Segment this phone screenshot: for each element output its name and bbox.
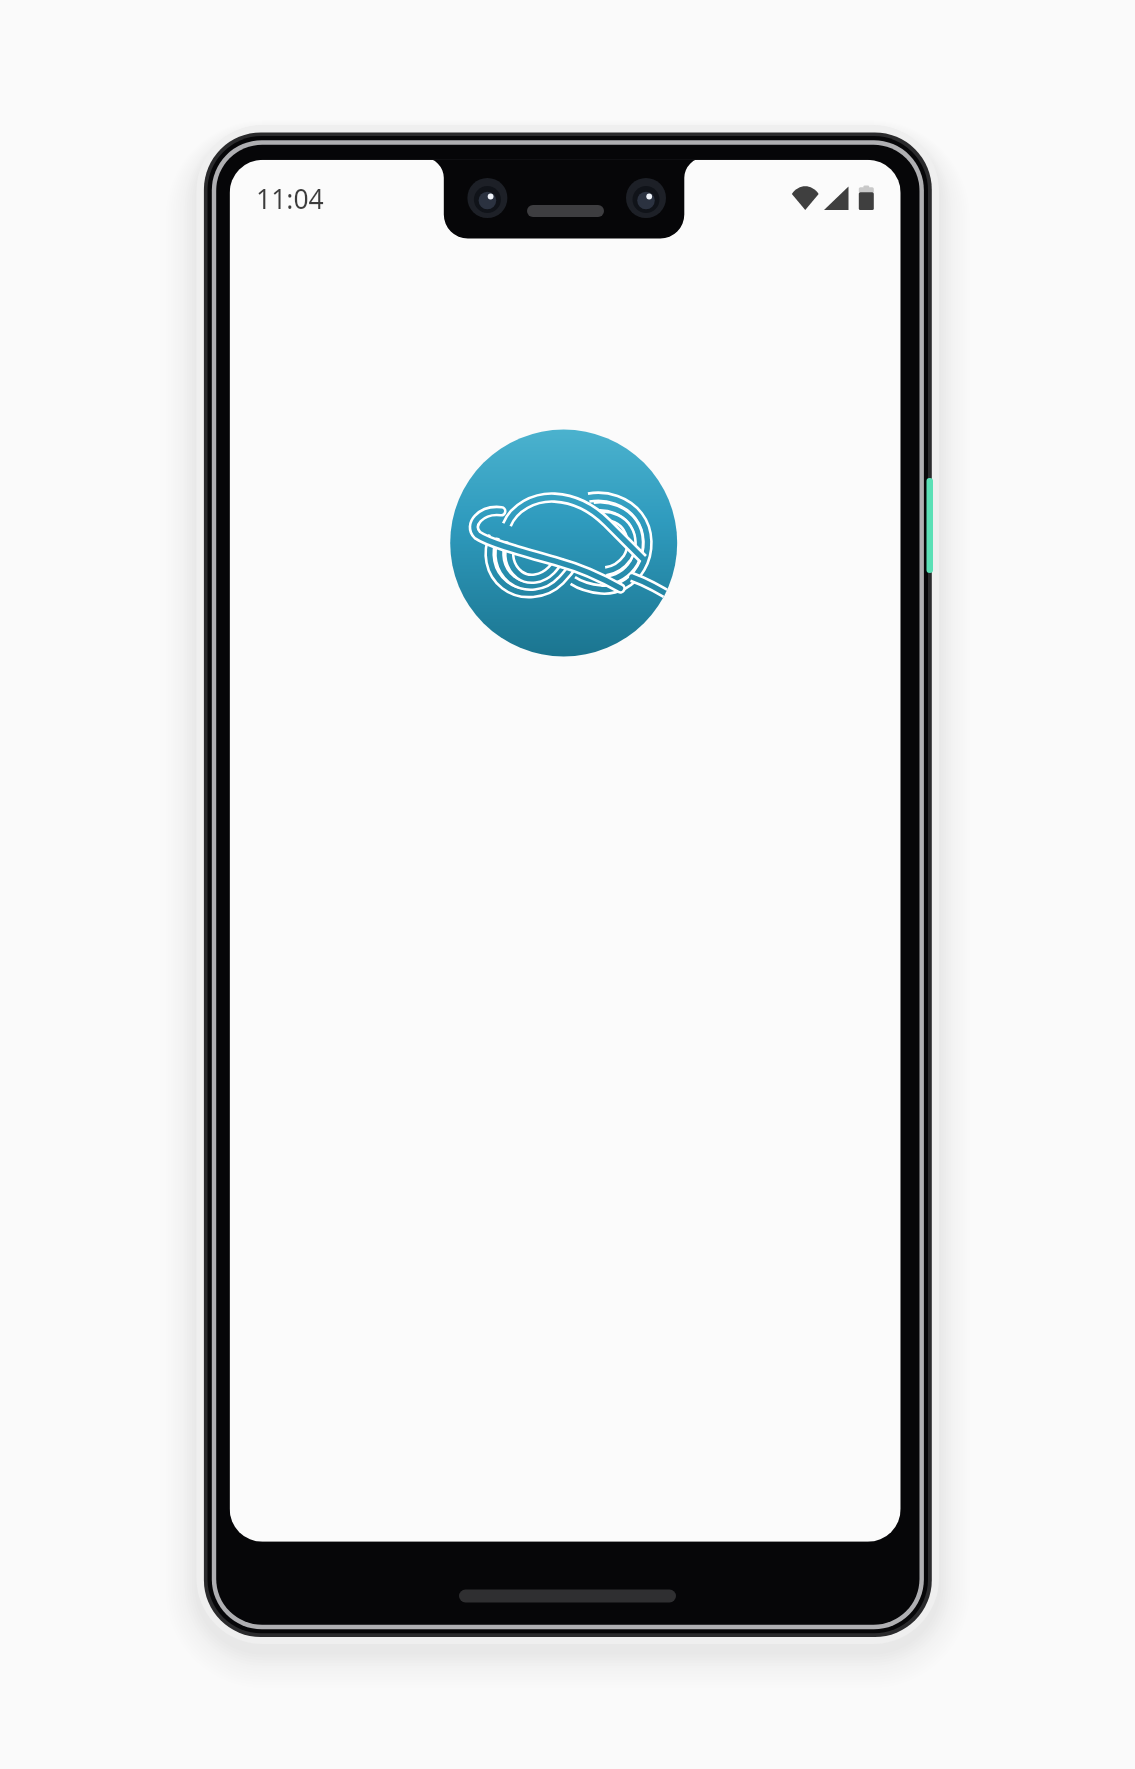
button[interactable]: App splash screen — [0, 0, 1135, 1769]
